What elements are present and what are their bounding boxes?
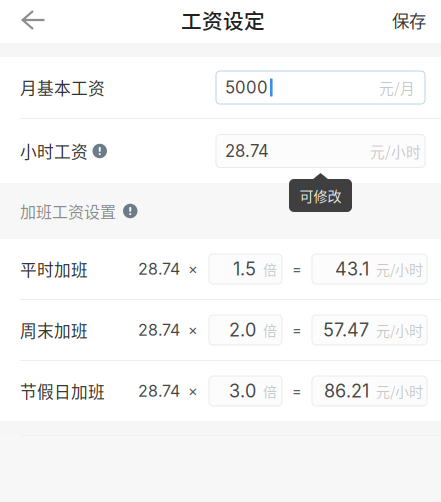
button[interactable]: 2.0 [209,315,282,345]
staticText: × [188,260,198,278]
staticText: 28.74 [225,141,269,161]
staticText: 86.21 [324,380,369,402]
staticText: 元/小时 [376,259,423,279]
staticText: 倍 [263,381,277,401]
button[interactable]: Back [0,0,66,40]
button[interactable]: 5000 [216,71,425,104]
staticText: = [292,321,302,339]
staticText: 元/小时 [370,140,421,162]
staticText: 月基本工资 [20,75,105,99]
staticText: 1.5 [233,258,256,280]
staticText: 元/月 [379,77,415,98]
staticText: 保存 [392,7,426,33]
staticText: 28.74 [138,259,180,279]
staticText: = [292,260,302,278]
staticText: 5000 [225,77,268,98]
staticText: 43.1 [335,258,369,280]
button[interactable]: 保存 [377,0,441,40]
staticText: 周末加班 [20,318,88,342]
staticText: × [188,321,198,339]
staticText: = [292,382,302,400]
staticText: 3.0 [229,380,256,402]
button[interactable]: 3.0 [209,376,282,406]
staticText: 28.74 [138,381,180,401]
staticText: 可修改 [299,185,341,206]
staticText: 加班工资设置 [20,199,116,223]
button[interactable]: 43.1 [312,254,427,284]
staticText: 倍 [263,320,277,340]
staticText: 28.74 [138,320,180,340]
button[interactable]: 28.74 [216,134,425,167]
button[interactable]: 86.21 [312,376,427,406]
staticText: 节假日加班 [20,379,105,403]
staticText: 2.0 [229,319,256,341]
staticText: 工资设定 [181,5,265,35]
staticText: 倍 [263,259,277,279]
staticText: 小时工资 [20,139,88,163]
staticText: 元/小时 [376,381,423,401]
staticText: 元/小时 [376,320,423,340]
staticText: 平时加班 [20,257,88,281]
button[interactable]: 1.5 [209,254,282,284]
staticText: × [188,382,198,400]
button[interactable]: 57.47 [312,315,427,345]
staticText: 57.47 [323,319,369,341]
